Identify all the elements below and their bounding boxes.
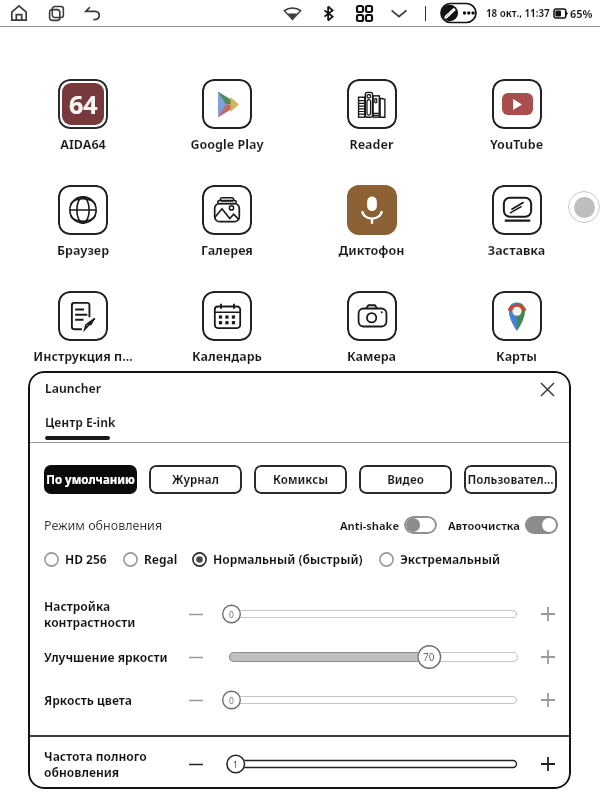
button[interactable]: Браузер	[11, 185, 155, 259]
staticText: Режим обновления	[44, 517, 163, 534]
staticText: Настройка контрастности	[44, 598, 136, 630]
button[interactable]: Decrease	[187, 645, 205, 669]
staticText: 18 окт., 11:37	[486, 7, 550, 20]
staticText: YouTube	[444, 136, 589, 153]
button[interactable]: Quick settings	[357, 1, 372, 25]
staticText: Regal	[144, 551, 178, 567]
staticText: 70	[423, 650, 435, 664]
button[interactable]: Wi-Fi	[284, 1, 301, 25]
button[interactable]: Expand	[391, 1, 407, 25]
button[interactable]: Bluetooth	[324, 1, 333, 25]
staticText: Anti-shake	[340, 518, 399, 533]
button[interactable]: Slider	[222, 600, 515, 628]
button[interactable]: Increase	[541, 688, 555, 712]
staticText: Частота полного обновления	[44, 748, 147, 780]
button[interactable]: Recent apps	[43, 0, 69, 26]
staticText: По умолчанию	[46, 472, 135, 488]
staticText: AIDA64	[11, 136, 155, 153]
button[interactable]: Increase	[541, 602, 555, 626]
button[interactable]: Календарь	[155, 291, 299, 365]
button[interactable]: Пользователь...	[464, 465, 557, 494]
button[interactable]: Инструкция п...	[11, 291, 155, 365]
button[interactable]: Regal	[123, 551, 178, 567]
staticText: Улучшение яркости	[44, 649, 168, 665]
button[interactable]: Toggle off	[404, 516, 437, 534]
staticText: Карты	[444, 348, 589, 365]
staticText: Видео	[387, 472, 424, 488]
button[interactable]: Toggle on	[525, 516, 558, 534]
button[interactable]: Increase	[541, 645, 555, 669]
staticText: Launcher	[45, 380, 102, 396]
staticText: Экстремальный	[400, 551, 500, 567]
staticText: Камера	[299, 348, 444, 365]
staticText: Google Play	[155, 136, 299, 153]
staticText: 0	[229, 609, 234, 621]
button[interactable]: Slider	[222, 750, 515, 778]
staticText: HD 256	[65, 551, 107, 567]
button[interactable]: 64	[11, 79, 155, 153]
button[interactable]: Close	[534, 376, 560, 402]
staticText: Диктофон	[299, 242, 444, 259]
button[interactable]: Нормальный (быстрый)	[192, 551, 363, 567]
staticText: 65%	[570, 6, 593, 21]
button[interactable]: Камера	[299, 291, 444, 365]
staticText: Пользователь...	[466, 472, 555, 488]
staticText: Reader	[299, 136, 444, 153]
button[interactable]: Google Play	[155, 79, 299, 153]
button[interactable]: Decrease	[187, 688, 205, 712]
button[interactable]: Галерея	[155, 185, 299, 259]
staticText: Заставка	[444, 242, 589, 259]
staticText: Комиксы	[273, 472, 328, 488]
staticText: Нормальный (быстрый)	[213, 551, 363, 567]
staticText: 1	[233, 759, 238, 771]
staticText: Яркость цвета	[44, 692, 133, 708]
button[interactable]: Back	[80, 0, 106, 26]
staticText: 64	[69, 87, 98, 121]
staticText: Инструкция п...	[11, 348, 155, 365]
button[interactable]: Видео	[359, 465, 452, 494]
button[interactable]: Комиксы	[254, 465, 347, 494]
button[interactable]: Refresh mode	[440, 2, 477, 24]
button[interactable]: Decrease	[187, 602, 205, 626]
button[interactable]: Карты	[444, 291, 589, 365]
button[interactable]: По умолчанию	[44, 465, 137, 494]
staticText: 0	[229, 695, 234, 707]
staticText: Центр E-ink	[45, 414, 116, 430]
staticText: Журнал	[172, 472, 219, 488]
button[interactable]: HD 256	[44, 551, 107, 567]
staticText: Календарь	[155, 348, 299, 365]
button[interactable]: Increase	[541, 752, 555, 776]
staticText: Галерея	[155, 242, 299, 259]
button[interactable]: Reader	[299, 79, 444, 153]
staticText: Браузер	[11, 242, 155, 259]
button[interactable]: YouTube	[444, 79, 589, 153]
button[interactable]: Assistant ball	[568, 191, 600, 223]
button[interactable]: Журнал	[149, 465, 242, 494]
button[interactable]: Slider	[222, 686, 515, 714]
button[interactable]: Экстремальный	[379, 551, 500, 567]
button[interactable]: Диктофон	[299, 185, 444, 259]
button[interactable]: Заставка	[444, 185, 589, 259]
button[interactable]: Home	[6, 0, 32, 26]
button[interactable]: Slider	[222, 643, 515, 671]
staticText: Автоочистка	[448, 518, 520, 533]
button[interactable]: Decrease	[187, 752, 205, 776]
